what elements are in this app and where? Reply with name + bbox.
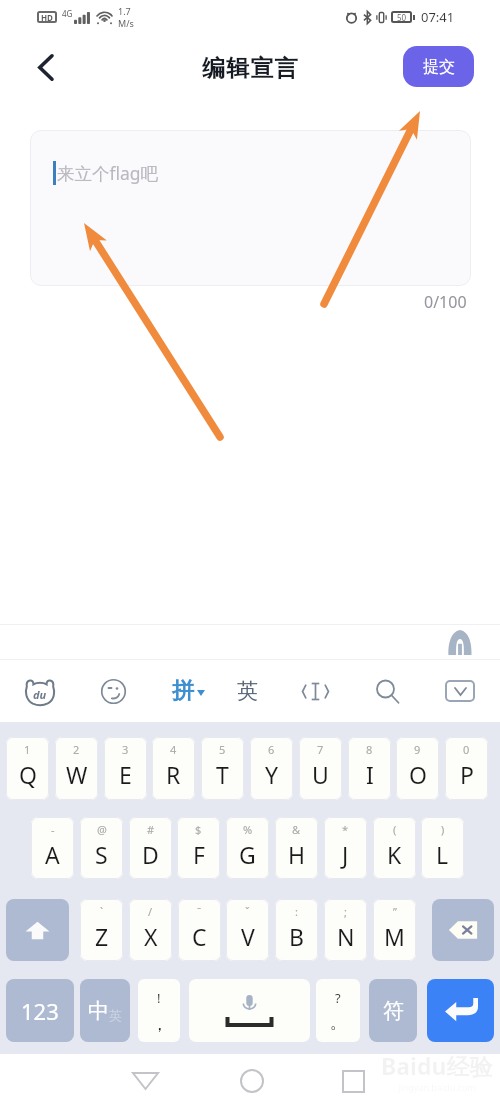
staticText: 拼 bbox=[172, 677, 194, 705]
button[interactable]: 来立个flag吧 bbox=[30, 130, 471, 286]
staticText: L bbox=[436, 839, 449, 870]
staticText: X bbox=[144, 921, 158, 952]
button[interactable]: : bbox=[275, 899, 318, 961]
button[interactable]: ; bbox=[324, 899, 367, 961]
staticText: 4 bbox=[170, 742, 177, 757]
staticText: 。 bbox=[330, 1012, 347, 1033]
staticText: / bbox=[148, 904, 153, 919]
button[interactable]: 3 bbox=[104, 737, 147, 800]
button[interactable]: Enter bbox=[427, 979, 494, 1042]
button[interactable]: 英 bbox=[232, 676, 262, 706]
button[interactable]: & bbox=[275, 817, 318, 879]
button[interactable]: 1 bbox=[6, 737, 49, 800]
button[interactable]: Hide keyboard bbox=[438, 669, 482, 713]
staticText: V bbox=[241, 921, 255, 952]
staticText: 7 bbox=[317, 742, 324, 757]
staticText: HD bbox=[41, 12, 53, 23]
button[interactable]: 提交 bbox=[403, 46, 474, 87]
staticText: 4G bbox=[62, 8, 73, 19]
staticText: G bbox=[239, 839, 256, 870]
button[interactable]: - bbox=[31, 817, 74, 879]
staticText: 6 bbox=[268, 742, 275, 757]
staticText: @ bbox=[97, 822, 107, 837]
button[interactable]: $ bbox=[177, 817, 220, 879]
button[interactable]: 0 bbox=[445, 737, 488, 800]
button[interactable]: Shift bbox=[6, 899, 69, 961]
staticText: ” bbox=[393, 904, 397, 919]
button[interactable]: Symbols bbox=[369, 979, 417, 1042]
button[interactable]: Language bbox=[80, 979, 130, 1042]
staticText: 3 bbox=[122, 742, 129, 757]
staticText: ， bbox=[151, 1014, 168, 1035]
button[interactable]: ˋ bbox=[80, 899, 123, 961]
staticText: J bbox=[342, 839, 349, 870]
staticText: 1.7 bbox=[118, 5, 131, 17]
button[interactable]: Emoji bbox=[91, 669, 135, 713]
staticText: 2 bbox=[73, 742, 80, 757]
staticText: Q bbox=[19, 759, 37, 790]
staticText: M bbox=[384, 921, 405, 952]
staticText: ˇ bbox=[245, 904, 250, 919]
staticText: 8 bbox=[366, 742, 373, 757]
staticText: Z bbox=[95, 921, 109, 952]
button[interactable]: Back bbox=[122, 1058, 168, 1104]
button[interactable]: 9 bbox=[396, 737, 439, 800]
button[interactable]: * bbox=[324, 817, 367, 879]
button[interactable]: 4 bbox=[152, 737, 195, 800]
staticText: 英 bbox=[237, 678, 258, 704]
staticText: du bbox=[33, 687, 47, 702]
staticText: - bbox=[51, 822, 55, 837]
staticText: K bbox=[387, 839, 402, 870]
staticText: O bbox=[409, 759, 427, 790]
staticText: H bbox=[288, 839, 306, 870]
staticText: E bbox=[119, 759, 132, 790]
staticText: 编辑宣言 bbox=[202, 54, 299, 83]
staticText: $ bbox=[195, 822, 202, 837]
staticText: ! bbox=[157, 989, 161, 1007]
button[interactable]: 拼 bbox=[172, 669, 205, 713]
button[interactable]: Space bbox=[189, 979, 310, 1042]
button[interactable]: ” bbox=[373, 899, 416, 961]
button[interactable]: Recents bbox=[330, 1058, 376, 1104]
staticText: P bbox=[460, 759, 474, 790]
staticText: I bbox=[366, 759, 374, 790]
button[interactable]: Back bbox=[23, 45, 67, 89]
button[interactable]: ˇ bbox=[226, 899, 269, 961]
button[interactable]: Backspace bbox=[432, 899, 494, 961]
staticText: ? bbox=[335, 989, 341, 1007]
button[interactable]: 7 bbox=[299, 737, 342, 800]
staticText: 英 bbox=[109, 1007, 122, 1023]
button[interactable]: Period bbox=[316, 979, 360, 1042]
button[interactable]: Search bbox=[365, 669, 409, 713]
button[interactable]: ˉ bbox=[178, 899, 221, 961]
button[interactable]: Comma bbox=[138, 979, 180, 1042]
staticText: 中 bbox=[88, 998, 109, 1024]
button[interactable]: Numbers bbox=[6, 979, 74, 1042]
staticText: * bbox=[342, 822, 349, 837]
staticText: N bbox=[337, 921, 355, 952]
staticText: % bbox=[243, 822, 253, 837]
button[interactable]: 8 bbox=[348, 737, 391, 800]
button[interactable]: Home bbox=[229, 1058, 275, 1104]
button[interactable]: 6 bbox=[250, 737, 293, 800]
staticText: C bbox=[192, 921, 207, 952]
staticText: 5 bbox=[219, 742, 226, 757]
staticText: 07:41 bbox=[421, 8, 455, 26]
other: Keyboard logo bbox=[448, 630, 472, 655]
button[interactable]: 2 bbox=[55, 737, 98, 800]
button[interactable]: Baidu bbox=[18, 669, 62, 713]
staticText: 0 bbox=[463, 742, 470, 757]
staticText: ˋ bbox=[100, 904, 104, 919]
button[interactable]: @ bbox=[80, 817, 123, 879]
button[interactable]: % bbox=[226, 817, 269, 879]
button[interactable]: / bbox=[129, 899, 172, 961]
staticText: D bbox=[142, 839, 159, 870]
button[interactable]: # bbox=[129, 817, 172, 879]
button[interactable]: Move cursor bbox=[293, 669, 337, 713]
button[interactable]: 5 bbox=[201, 737, 244, 800]
staticText: 9 bbox=[414, 742, 421, 757]
button[interactable]: ( bbox=[373, 817, 416, 879]
button[interactable]: ) bbox=[421, 817, 464, 879]
staticText: ; bbox=[344, 904, 347, 919]
staticText: ˉ bbox=[197, 904, 202, 919]
